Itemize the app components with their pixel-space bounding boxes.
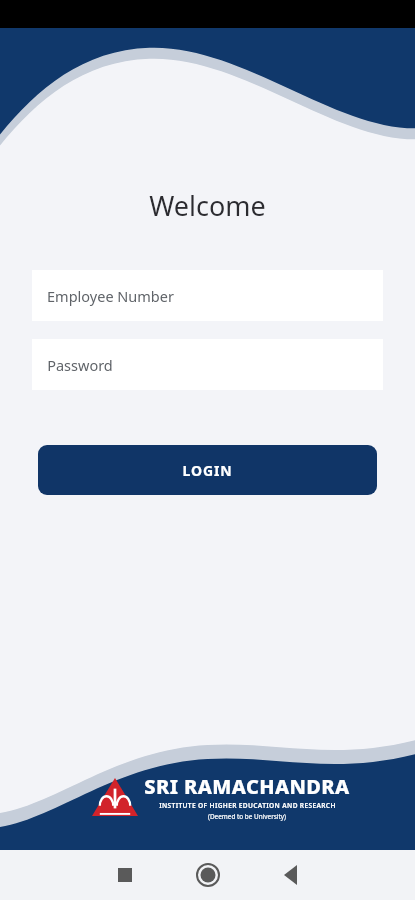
staticText: (Deemed to be University)	[208, 812, 286, 821]
button[interactable]: LOGIN	[38, 445, 377, 495]
staticText: Password	[47, 355, 113, 375]
button[interactable]: Back	[249, 850, 332, 900]
staticText: SRI RAMACHANDRA	[144, 773, 350, 800]
staticText: LOGIN	[182, 461, 233, 480]
button[interactable]: Employee Number	[32, 270, 383, 321]
button[interactable]: Home	[166, 850, 249, 900]
button[interactable]: Password	[32, 339, 383, 390]
button[interactable]: Recent apps	[83, 850, 166, 900]
staticText: Employee Number	[47, 286, 174, 306]
staticText: Welcome	[149, 187, 266, 224]
staticText: INSTITUTE OF HIGHER EDUCATION AND RESEAR…	[159, 801, 336, 810]
